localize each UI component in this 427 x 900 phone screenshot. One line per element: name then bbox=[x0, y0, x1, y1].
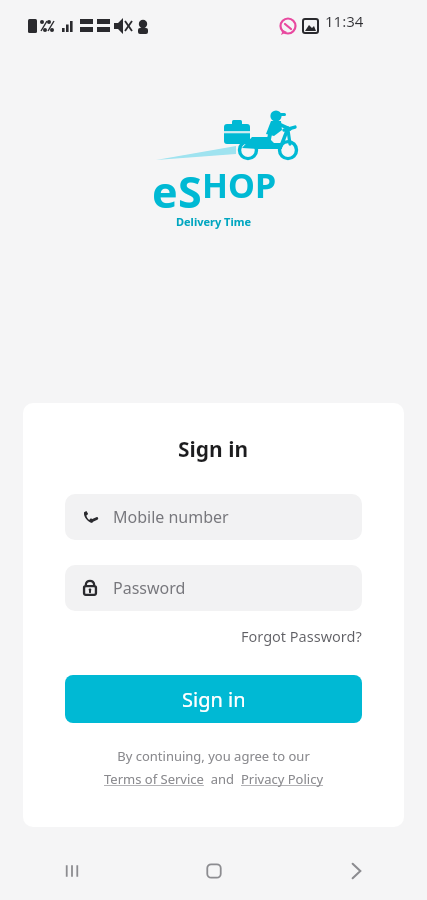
button[interactable]: Sign in bbox=[65, 675, 362, 723]
staticText: S bbox=[178, 162, 202, 208]
button[interactable]: Back bbox=[285, 842, 427, 900]
staticText: HOP bbox=[202, 162, 277, 207]
button[interactable]: Home bbox=[143, 842, 285, 900]
button[interactable]: Terms of Service bbox=[104, 770, 204, 788]
button[interactable]: Forgot Password? bbox=[241, 623, 362, 649]
button[interactable]: Recent apps bbox=[0, 842, 143, 900]
staticText: Delivery Time bbox=[176, 214, 252, 229]
staticText: By continuing, you agree to our bbox=[117, 747, 310, 765]
button[interactable]: Mobile number bbox=[65, 494, 362, 540]
staticText: Password bbox=[113, 577, 186, 599]
button[interactable]: Password bbox=[65, 565, 362, 611]
staticText: and bbox=[204, 770, 241, 788]
staticText: 11:34 bbox=[325, 11, 364, 31]
staticText: Sign in bbox=[178, 435, 249, 464]
button[interactable]: Privacy Policy bbox=[241, 770, 324, 788]
staticText: Mobile number bbox=[113, 506, 229, 528]
staticText: e bbox=[152, 162, 178, 208]
staticText: Sign in bbox=[182, 686, 246, 713]
